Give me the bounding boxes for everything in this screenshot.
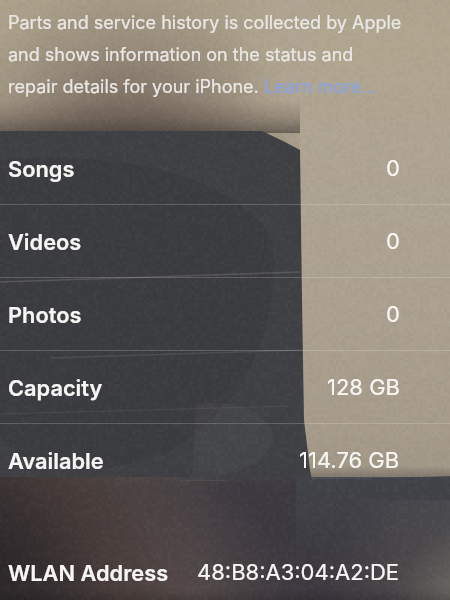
staticText: 0	[386, 155, 400, 182]
staticText: Available	[8, 448, 104, 474]
staticText: Videos	[8, 229, 82, 255]
button[interactable]: Photos	[0, 278, 450, 351]
staticText: and shows information on the status and	[8, 44, 354, 66]
staticText: 114.76 GB	[299, 447, 400, 474]
staticText: 48:B8:A3:04:A2:DE	[197, 559, 400, 586]
staticText: Photos	[8, 302, 82, 328]
staticText: WLAN Address	[8, 560, 169, 586]
staticText: Capacity	[8, 375, 103, 401]
staticText: Songs	[8, 156, 75, 182]
button[interactable]: Songs	[0, 132, 450, 205]
button[interactable]: Available	[0, 424, 450, 497]
button[interactable]: Videos	[0, 205, 450, 278]
staticText: Parts and service history is collected b…	[8, 12, 402, 34]
button[interactable]: WLAN Address	[0, 536, 450, 600]
button[interactable]: Learn more...	[264, 76, 377, 98]
staticText: repair details for your iPhone.	[8, 76, 264, 98]
button[interactable]: Capacity	[0, 351, 450, 424]
staticText: 0	[386, 301, 400, 328]
staticText: 128 GB	[327, 374, 400, 401]
staticText: 0	[386, 228, 400, 255]
